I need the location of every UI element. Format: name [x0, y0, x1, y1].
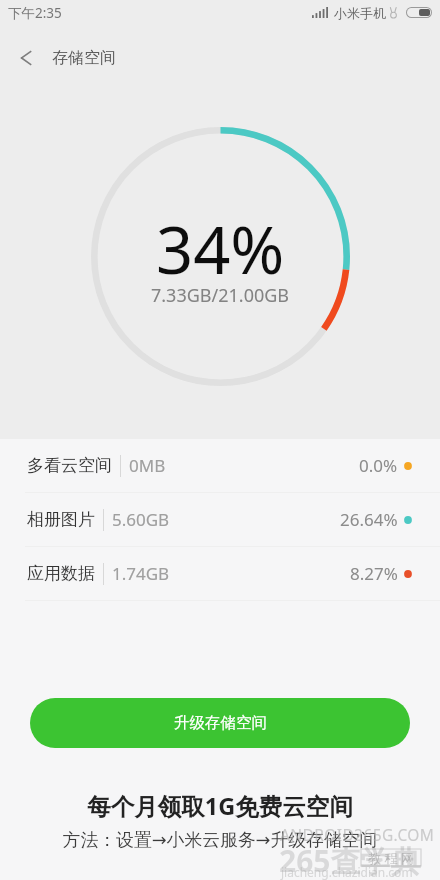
staticText: ANDROID265G.COM — [280, 824, 435, 845]
staticText: 265查学典 — [279, 840, 421, 880]
staticText: jiacheng.chazidian.com — [281, 864, 413, 880]
button[interactable]: 相册图片 — [0, 493, 440, 546]
button[interactable]: 升级存储空间 — [30, 698, 410, 748]
staticText: 方法：设置→小米云服务→升级存储空间 — [0, 829, 440, 851]
staticText: 应用数据 — [27, 563, 95, 584]
staticText: 7.33GB/21.00GB — [151, 283, 290, 308]
staticText: 34% — [156, 205, 285, 294]
staticText: 升级存储空间 — [174, 713, 267, 733]
staticText: 0MB — [129, 454, 166, 477]
staticText: 小米手机 — [334, 5, 386, 21]
staticText: 1.74GB — [112, 562, 170, 585]
staticText: 26.64% — [340, 508, 398, 531]
button[interactable]: 应用数据 — [0, 547, 440, 600]
staticText: 8.27% — [350, 562, 398, 585]
staticText: 5.60GB — [112, 508, 170, 531]
staticText: 相册图片 — [27, 509, 95, 530]
staticText: 教 程 网 — [368, 849, 414, 866]
staticText: 每个月领取1G免费云空间 — [0, 790, 440, 822]
staticText: 下午2:35 — [8, 4, 62, 22]
staticText: 0.0% — [359, 454, 398, 477]
staticText: 存储空间 — [52, 48, 116, 68]
staticText: 多看云空间 — [27, 455, 112, 476]
button[interactable]: Back — [0, 25, 52, 91]
button[interactable]: 多看云空间 — [0, 439, 440, 492]
